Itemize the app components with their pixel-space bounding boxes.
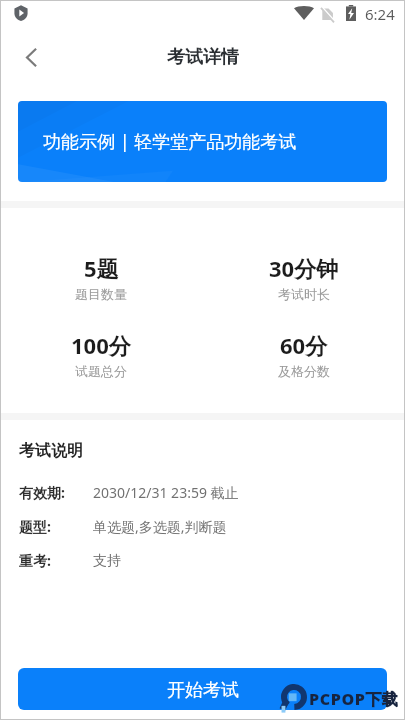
staticText: 题型:	[19, 517, 51, 536]
button[interactable]: Back	[15, 41, 47, 73]
staticText: 考试说明	[19, 441, 83, 461]
button[interactable]: 开始考试	[18, 668, 387, 710]
staticText: 有效期:	[19, 483, 65, 502]
staticText: 5题	[84, 253, 119, 283]
staticText: 100分	[71, 330, 131, 360]
staticText: 2030/12/31 23:59 截止	[93, 483, 239, 502]
staticText: 开始考试	[167, 679, 239, 702]
staticText: 6:24	[365, 4, 395, 24]
staticText: 30分钟	[269, 253, 339, 283]
staticText: 考试时长	[278, 286, 330, 302]
staticText: 及格分数	[278, 363, 330, 379]
staticText: 试题总分	[75, 363, 127, 379]
staticText: 功能示例 | 轻学堂产品功能考试	[43, 129, 297, 154]
button[interactable]: 功能示例 | 轻学堂产品功能考试	[18, 101, 387, 182]
staticText: 单选题,多选题,判断题	[93, 517, 227, 536]
staticText: 重考:	[19, 551, 51, 570]
staticText: 题目数量	[75, 286, 127, 302]
staticText: 60分	[280, 330, 328, 360]
staticText: 支持	[93, 552, 121, 570]
staticText: PCPOP下载	[309, 688, 399, 710]
staticText: 考试详情	[167, 46, 239, 69]
